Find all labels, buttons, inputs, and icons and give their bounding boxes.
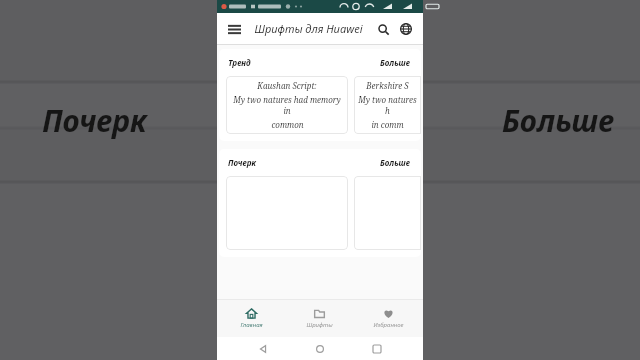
staticText: common [271, 119, 304, 130]
button[interactable]: Recents [366, 338, 388, 360]
button[interactable]: Language [396, 19, 416, 39]
button[interactable] [226, 176, 348, 250]
staticText: Избранное [373, 321, 404, 329]
button[interactable]: Главная [217, 300, 285, 337]
staticText: Больше [380, 157, 410, 168]
staticText: Berkshire S [366, 80, 409, 91]
button[interactable]: Больше [378, 155, 412, 170]
staticText: Больше [502, 100, 614, 141]
staticText: My two natures h [357, 94, 418, 116]
button[interactable] [354, 176, 421, 250]
button[interactable]: Kaushan Script: [226, 76, 348, 134]
staticText: Шрифты [306, 321, 333, 329]
button[interactable]: Больше [378, 55, 412, 70]
button[interactable]: Back [252, 338, 274, 360]
button[interactable]: Berkshire S [354, 76, 421, 134]
button[interactable]: Шрифты [285, 300, 354, 337]
button[interactable]: Menu [224, 19, 244, 39]
staticText: Почерк [42, 100, 147, 141]
staticText: Тренд [228, 57, 251, 68]
staticText: My two natures had memory in [229, 94, 345, 116]
button[interactable]: Search [373, 19, 393, 39]
staticText: Больше [380, 57, 410, 68]
button[interactable]: Избранное [354, 300, 423, 337]
staticText: Шрифты для Huawei [254, 21, 363, 36]
staticText: Kaushan Script: [257, 80, 317, 91]
staticText: in comm [371, 119, 404, 130]
staticText: Главная [240, 321, 263, 329]
button[interactable]: Home [309, 338, 331, 360]
staticText: Почерк [228, 157, 256, 168]
